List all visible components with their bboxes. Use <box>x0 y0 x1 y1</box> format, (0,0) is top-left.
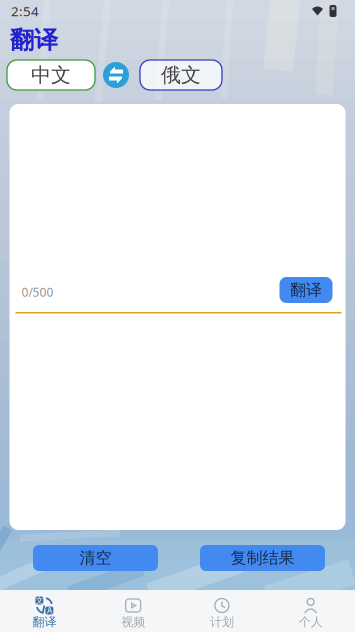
staticText: 2:54 <box>11 2 39 20</box>
staticText: 中文 <box>31 63 71 87</box>
staticText: 翻译 <box>290 280 322 300</box>
button[interactable]: 复制结果 <box>200 545 325 571</box>
button[interactable]: 计划 <box>177 590 266 632</box>
staticText: 文 <box>35 596 43 605</box>
button[interactable]: Swap languages <box>103 62 129 88</box>
staticText: 清空 <box>79 548 111 568</box>
staticText: 计划 <box>210 615 234 629</box>
button[interactable]: 个人 <box>266 590 355 632</box>
button[interactable]: 清空 <box>33 545 158 571</box>
staticText: A <box>47 605 52 616</box>
staticText: 视频 <box>121 615 145 629</box>
staticText: 个人 <box>299 615 323 629</box>
staticText: 0/500 <box>21 284 53 300</box>
button[interactable]: 中文 <box>7 60 95 90</box>
staticText: 翻译 <box>10 25 58 55</box>
button[interactable]: 翻译 <box>279 277 332 303</box>
staticText: 复制结果 <box>230 548 294 568</box>
staticText: 翻译 <box>32 615 56 629</box>
button[interactable]: 俄文 <box>140 60 222 90</box>
button[interactable]: 文 <box>0 590 89 632</box>
staticText: 俄文 <box>161 63 201 87</box>
button[interactable]: 视频 <box>89 590 178 632</box>
